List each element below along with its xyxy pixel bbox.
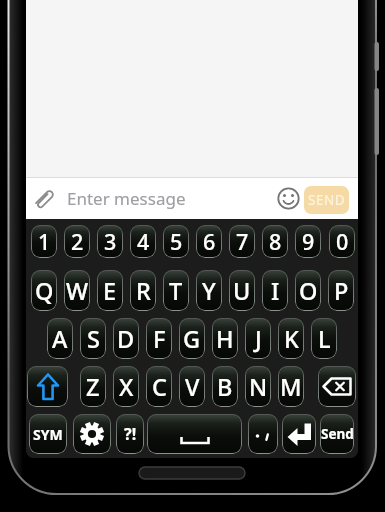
button[interactable]: J [245,318,271,359]
button[interactable]: R [130,270,156,311]
button[interactable]: L [311,318,337,359]
button[interactable]: 8 [262,225,288,258]
staticText: U [233,275,251,307]
staticText: 5 [170,227,183,256]
staticText: P [334,275,349,307]
staticText: W [66,275,89,307]
button[interactable]: SEND [304,186,349,214]
staticText: K [284,323,299,355]
button[interactable]: G [179,318,205,359]
button[interactable]: 4 [130,225,156,258]
button[interactable] [318,366,356,407]
staticText: A [52,323,68,355]
staticText: L [318,323,331,355]
button[interactable]: B [212,366,238,407]
button[interactable]: Z [80,366,106,407]
staticText: I [271,275,280,307]
staticText: Z [86,371,100,403]
button[interactable]: I [262,270,288,311]
button[interactable]: C [146,366,172,407]
button[interactable]: 1 [31,225,57,258]
button[interactable]: 9 [295,225,321,258]
staticText: Send [321,425,354,443]
staticText: 0 [336,227,349,256]
staticText: B [217,371,233,403]
button[interactable]: H [212,318,238,359]
staticText: 3 [104,227,117,256]
button[interactable]: F [146,318,172,359]
staticText: 4 [137,227,150,256]
button[interactable]: SYM [29,414,67,454]
button[interactable]: 7 [229,225,255,258]
button[interactable] [248,414,278,454]
button[interactable]: 2 [64,225,90,258]
button[interactable]: A [47,318,73,359]
staticText: 9 [302,227,315,256]
staticText: ?! [124,423,137,445]
staticText: M [280,371,302,403]
button[interactable]: Y [196,270,222,311]
button[interactable]: W [64,270,90,311]
button[interactable]: M [278,366,304,407]
button[interactable] [73,414,111,454]
button[interactable]: ?! [116,414,144,454]
button[interactable]: D [113,318,139,359]
button[interactable]: U [229,270,255,311]
staticText: 8 [269,227,282,256]
staticText: Enter message [67,187,186,210]
staticText: O [299,275,318,307]
button[interactable] [282,414,316,454]
button[interactable]: Send [320,414,354,454]
button[interactable]: T [163,270,189,311]
staticText: SEND [308,191,346,209]
button[interactable]: 0 [329,225,355,258]
staticText: J [255,323,262,355]
button[interactable]: N [245,366,271,407]
button[interactable]: X [113,366,139,407]
staticText: H [216,323,234,355]
button[interactable]: Enter message [26,178,358,219]
staticText: R [136,275,151,307]
button[interactable]: E [97,270,123,311]
staticText: 7 [236,227,249,256]
staticText: X [119,371,134,403]
button[interactable]: V [179,366,205,407]
button[interactable]: 3 [97,225,123,258]
button[interactable]: K [278,318,304,359]
staticText: C [152,371,167,403]
button[interactable]: O [295,270,321,311]
staticText: 6 [203,227,216,256]
button[interactable]: Q [31,270,57,311]
staticText: G [183,323,201,355]
staticText: N [249,371,268,403]
button[interactable] [27,366,68,407]
button[interactable]: P [328,270,354,311]
staticText: Q [35,275,54,307]
staticText: E [103,275,117,307]
button[interactable]: 6 [196,225,222,258]
button[interactable] [147,414,242,454]
staticText: SYM [33,425,63,444]
button[interactable]: 5 [163,225,189,258]
staticText: D [117,323,135,355]
staticText: F [153,323,166,355]
button[interactable]: S [80,318,106,359]
staticText: 1 [38,227,51,256]
staticText: 2 [71,227,84,256]
staticText: S [87,323,100,355]
staticText: Y [202,275,216,307]
staticText: V [185,371,200,403]
staticText: T [169,275,183,307]
